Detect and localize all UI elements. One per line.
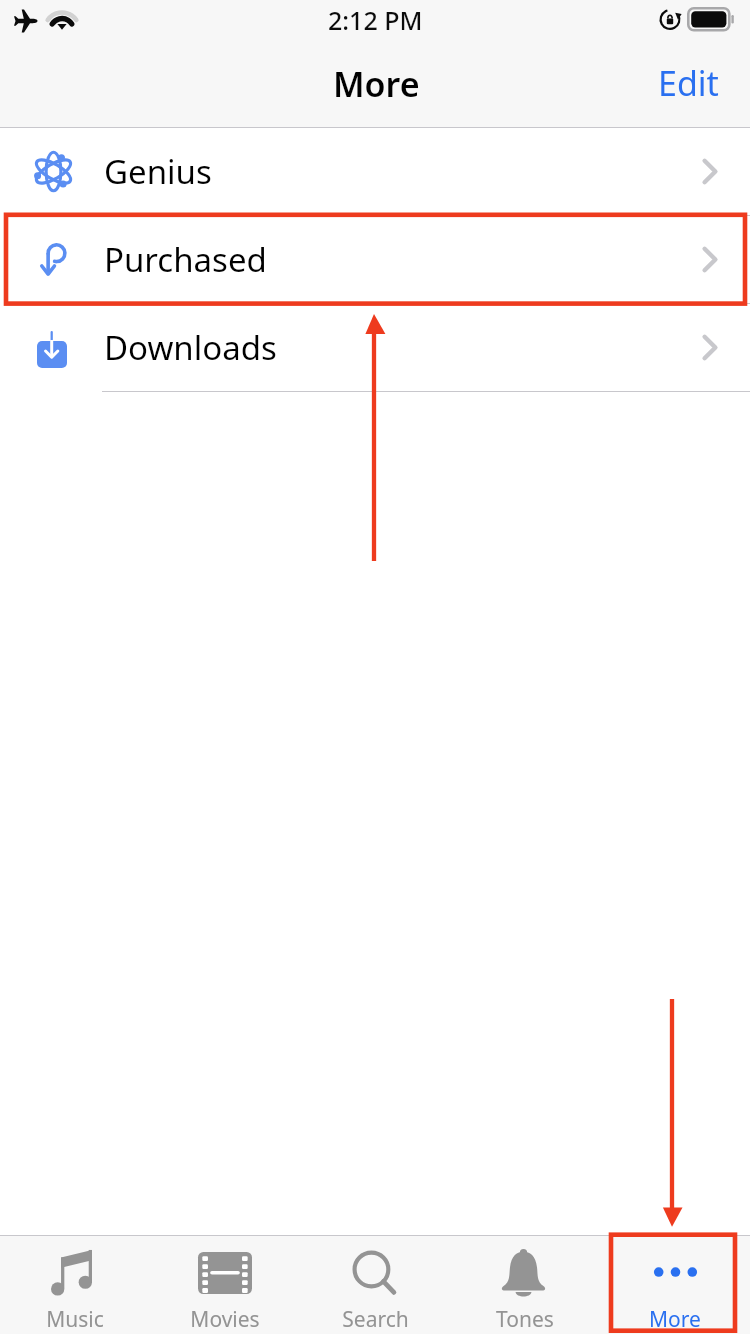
staticText: Music <box>46 1305 104 1334</box>
button[interactable]: Edit <box>638 48 739 118</box>
staticText: Movies <box>190 1305 260 1334</box>
staticText: Downloads <box>104 325 277 370</box>
button[interactable]: Tones <box>450 1235 600 1334</box>
button[interactable]: Genius <box>0 128 750 215</box>
button[interactable]: More <box>600 1235 750 1334</box>
button[interactable]: Purchased <box>0 216 750 303</box>
staticText: Genius <box>104 149 212 194</box>
staticText: More <box>333 61 420 107</box>
staticText: More <box>649 1305 701 1334</box>
button[interactable]: Downloads <box>0 304 750 391</box>
staticText: Tones <box>496 1305 554 1334</box>
staticText: Search <box>342 1305 409 1334</box>
button[interactable]: Music <box>0 1235 150 1334</box>
button[interactable]: Search <box>300 1235 450 1334</box>
button[interactable]: Movies <box>150 1235 300 1334</box>
staticText: Edit <box>658 60 719 106</box>
staticText: 2:12 PM <box>328 3 423 37</box>
staticText: Purchased <box>104 237 267 282</box>
